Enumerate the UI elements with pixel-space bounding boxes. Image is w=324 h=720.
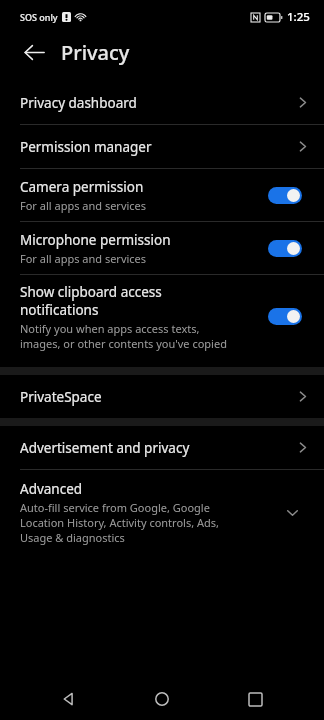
button[interactable]: Back [45,678,93,720]
staticText: Privacy dashboard [20,94,137,112]
button[interactable]: Toggle [268,308,302,325]
button[interactable]: PrivateSpace [0,375,324,418]
button[interactable]: Advertisement and privacy [0,426,324,469]
staticText: 1:25 [287,9,310,25]
staticText: SOS only [20,11,58,23]
staticText: For all apps and services [20,251,147,266]
button[interactable]: Toggle [268,187,302,204]
staticText: PrivateSpace [20,388,102,406]
button[interactable]: Toggle [268,240,302,257]
button[interactable]: Privacy dashboard [0,81,324,124]
button[interactable]: Advanced [0,470,324,555]
staticText: Advanced [20,480,83,498]
staticText: Permission manager [20,138,152,156]
button[interactable]: Recents [231,678,279,720]
staticText: Auto-fill service from Google, Google Lo… [20,500,219,545]
staticText: Camera permission [20,178,144,196]
staticText: Show clipboard access notifications [20,283,162,319]
button[interactable]: Home [138,678,186,720]
staticText: Microphone permission [20,231,171,249]
staticText: For all apps and services [20,198,147,213]
button[interactable]: Show clipboard access notifications [0,275,324,358]
staticText: Privacy [61,39,130,66]
button[interactable]: Permission manager [0,125,324,168]
staticText: Advertisement and privacy [20,439,190,457]
button[interactable]: Microphone permission [0,222,324,274]
button[interactable]: Camera permission [0,169,324,221]
staticText: Notify you when apps access texts, image… [20,321,227,351]
button[interactable]: Back [16,34,52,70]
